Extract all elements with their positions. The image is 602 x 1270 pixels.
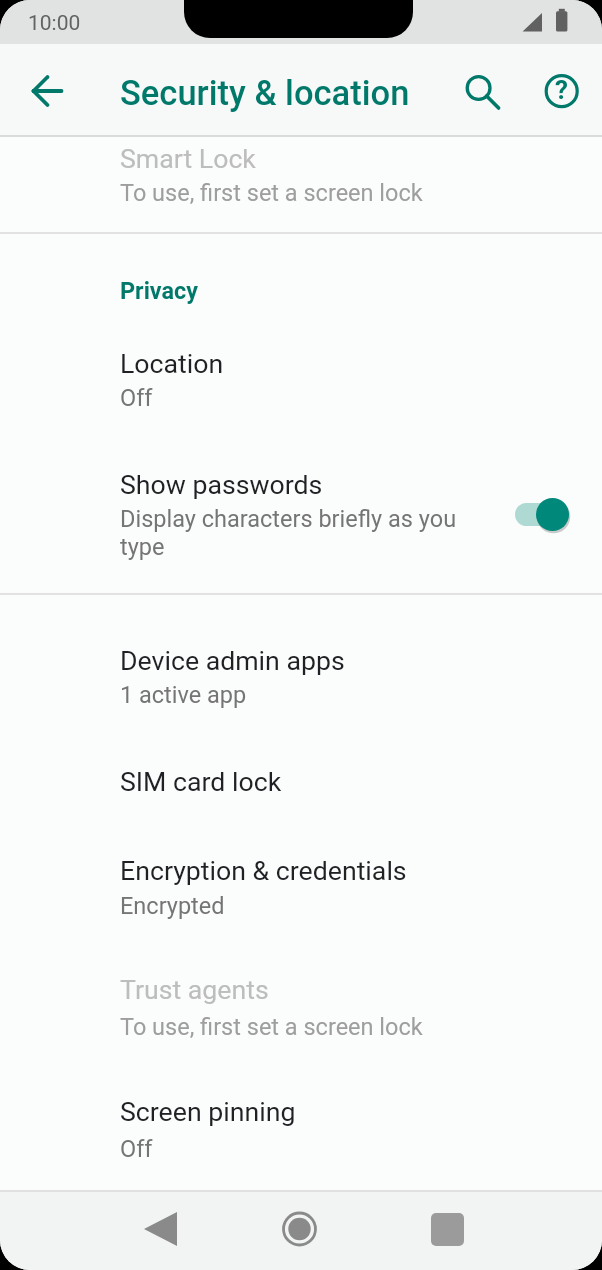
button[interactable]: Screen pinning <box>0 1086 602 1174</box>
staticText: Off <box>120 1135 153 1163</box>
staticText: Device admin apps <box>120 645 345 676</box>
button[interactable] <box>23 67 71 115</box>
button[interactable]: Show passwords <box>0 458 602 582</box>
button[interactable]: Trust agents <box>0 964 602 1052</box>
button[interactable]: Location <box>0 338 602 426</box>
staticText: Encryption & credentials <box>120 855 407 886</box>
button[interactable] <box>110 1192 210 1268</box>
button[interactable]: Smart Lock <box>0 137 602 231</box>
button[interactable] <box>390 1192 490 1268</box>
staticText: Location <box>120 348 224 379</box>
staticText: Security & location <box>120 73 410 113</box>
staticText: To use, first set a screen lock <box>120 179 423 207</box>
staticText: ? <box>555 75 568 105</box>
staticText: Privacy <box>120 277 199 304</box>
staticText: Smart Lock <box>120 143 256 174</box>
staticText: Trust agents <box>120 974 269 1005</box>
staticText: 10:00 <box>28 11 81 36</box>
button[interactable] <box>250 1192 350 1268</box>
staticText: 1 active app <box>120 681 247 709</box>
staticText: Off <box>120 384 153 412</box>
staticText: Screen pinning <box>120 1096 296 1127</box>
button[interactable]: Encryption & credentials <box>0 845 602 933</box>
staticText: Show passwords <box>120 469 323 500</box>
button[interactable]: SIM card lock <box>0 752 602 816</box>
button[interactable]: ? <box>536 67 584 115</box>
button[interactable]: Device admin apps <box>0 635 602 723</box>
staticText: Encrypted <box>120 892 225 920</box>
staticText: To use, first set a screen lock <box>120 1013 423 1041</box>
staticText: Display characters briefly as you type <box>120 505 465 561</box>
button[interactable] <box>455 67 503 115</box>
staticText: SIM card lock <box>120 766 282 797</box>
